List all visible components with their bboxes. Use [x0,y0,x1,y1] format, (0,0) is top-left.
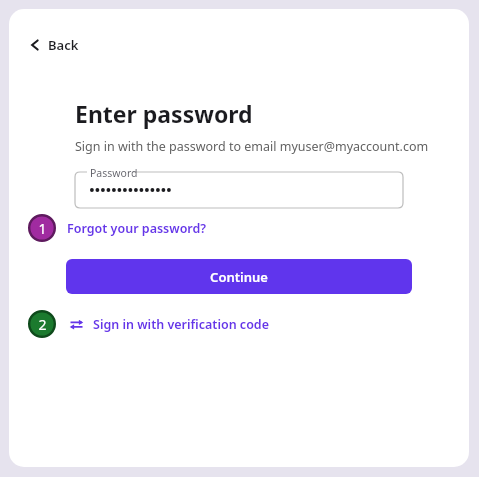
staticText: Continue [210,268,268,286]
staticText: Forgot your password? [67,220,207,237]
button[interactable]: Back [25,33,83,57]
staticText: Sign in with verification code [93,316,269,333]
button[interactable]: Forgot your password? [65,218,209,239]
staticText: 2 [38,315,47,334]
staticText: Enter password [75,98,253,129]
staticText: Password [90,166,138,180]
button[interactable] [90,172,403,208]
staticText: Sign in with the password to email myuse… [75,138,429,155]
button[interactable]: Switch sign-in method [67,314,271,335]
button[interactable]: Continue [66,259,412,294]
staticText: 1 [38,219,47,238]
other: Switch sign-in method [69,317,84,332]
staticText: Back [48,36,79,54]
